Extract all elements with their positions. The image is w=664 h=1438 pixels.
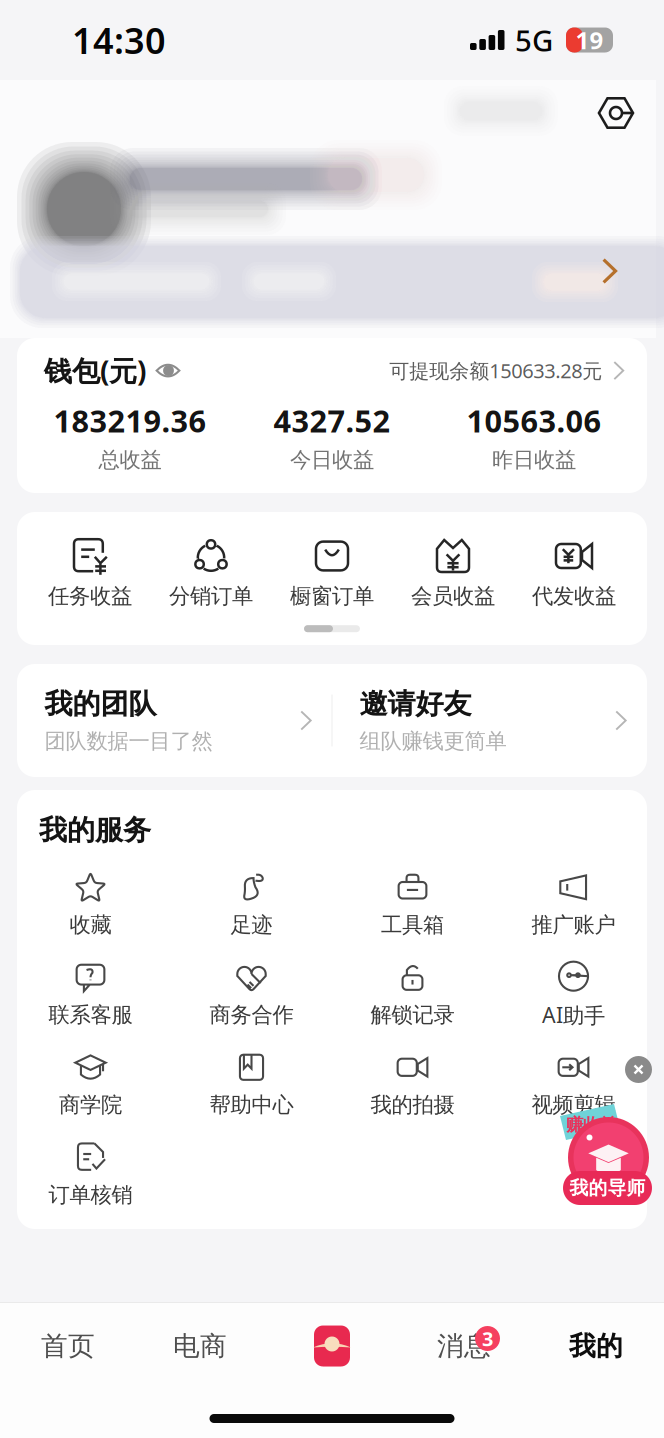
staticText: 5G	[515, 20, 553, 59]
button[interactable]: 183219.36	[29, 400, 231, 473]
button[interactable]: 我的拍摄	[332, 1040, 493, 1130]
staticText: 4327.52	[273, 400, 390, 441]
staticText: 橱窗订单	[290, 583, 374, 609]
staticText: 团队数据一目了然	[44, 728, 212, 754]
staticText: 会员收益	[411, 583, 495, 609]
staticText: 任务收益	[48, 583, 132, 609]
button[interactable]: Red packet	[266, 1312, 398, 1380]
button[interactable]: 我的	[530, 1312, 662, 1380]
staticText: 183219.36	[53, 400, 206, 441]
button[interactable]: 会员收益	[392, 536, 513, 609]
staticText: 19	[575, 24, 603, 56]
staticText: 帮助中心	[209, 1092, 293, 1118]
button[interactable]: 联系客服	[10, 950, 171, 1040]
staticText: 10563.06	[466, 400, 601, 441]
button[interactable]: 分销订单	[150, 536, 271, 609]
button[interactable]: 消息	[398, 1312, 530, 1380]
button[interactable]: 商学院	[10, 1040, 171, 1130]
button[interactable]: My mentor	[557, 1092, 652, 1197]
staticText: 首页	[41, 1330, 95, 1362]
button[interactable]: 订单核销	[10, 1130, 171, 1220]
button[interactable]: 我的团队	[17, 664, 331, 777]
staticText: 收藏	[69, 912, 111, 938]
button[interactable]: 电商	[134, 1312, 266, 1380]
button[interactable]: 解锁记录	[332, 950, 493, 1040]
button[interactable]: 商务合作	[171, 950, 332, 1040]
button[interactable]: Scan	[588, 85, 644, 141]
staticText: 商学院	[59, 1092, 122, 1118]
staticText: 联系客服	[48, 1002, 132, 1028]
staticText: 可提现余额150633.28元	[389, 357, 602, 384]
staticText: 足迹	[230, 912, 272, 938]
button[interactable]: 任务收益	[29, 536, 150, 609]
button[interactable]: 可提现余额150633.28元	[389, 357, 624, 384]
button[interactable]: 邀请好友	[332, 664, 646, 777]
staticText: 商务合作	[209, 1002, 293, 1028]
staticText: 工具箱	[381, 912, 444, 938]
button[interactable]: 10563.06	[433, 400, 635, 473]
staticText: 总收益	[98, 447, 161, 473]
staticText: 昨日收益	[492, 447, 576, 473]
staticText: 代发收益	[532, 583, 616, 609]
staticText: 3	[482, 1325, 493, 1352]
button[interactable]: 收藏	[10, 860, 171, 950]
button[interactable]: 视频剪辑	[493, 1040, 654, 1130]
button[interactable]: 帮助中心	[171, 1040, 332, 1130]
staticText: 14:30	[72, 16, 166, 64]
staticText: 我的	[569, 1330, 623, 1362]
button[interactable]: 足迹	[171, 860, 332, 950]
button[interactable]: 橱窗订单	[271, 536, 392, 609]
staticText: 解锁记录	[370, 1002, 454, 1028]
button[interactable]: 推广账户	[493, 860, 654, 950]
staticText: 钱包(元)	[44, 352, 146, 389]
staticText: 电商	[173, 1330, 227, 1362]
staticText: 我的拍摄	[370, 1092, 454, 1118]
staticText: 我的导师	[569, 1176, 645, 1199]
staticText: 视频剪辑	[531, 1092, 615, 1118]
staticText: 分销订单	[169, 583, 253, 609]
button[interactable]: Toggle balance	[146, 361, 185, 381]
button[interactable]: 代发收益	[513, 536, 634, 609]
staticText: AI助手	[542, 1001, 605, 1029]
staticText: 消息	[437, 1330, 491, 1362]
button[interactable]: 工具箱	[332, 860, 493, 950]
staticText: 赚收益	[566, 1114, 617, 1135]
staticText: 组队赚钱更简单	[359, 728, 506, 754]
button[interactable]: 首页	[2, 1312, 134, 1380]
staticText: 邀请好友	[359, 687, 471, 721]
button[interactable]: AI助手	[493, 950, 654, 1040]
staticText: 我的服务	[39, 813, 151, 847]
staticText: 推广账户	[531, 912, 615, 938]
staticText: 今日收益	[290, 447, 374, 473]
button[interactable]: Close	[625, 1056, 652, 1083]
button[interactable]: 4327.52	[231, 400, 433, 473]
staticText: 订单核销	[48, 1182, 132, 1208]
staticText: 我的团队	[44, 687, 156, 721]
